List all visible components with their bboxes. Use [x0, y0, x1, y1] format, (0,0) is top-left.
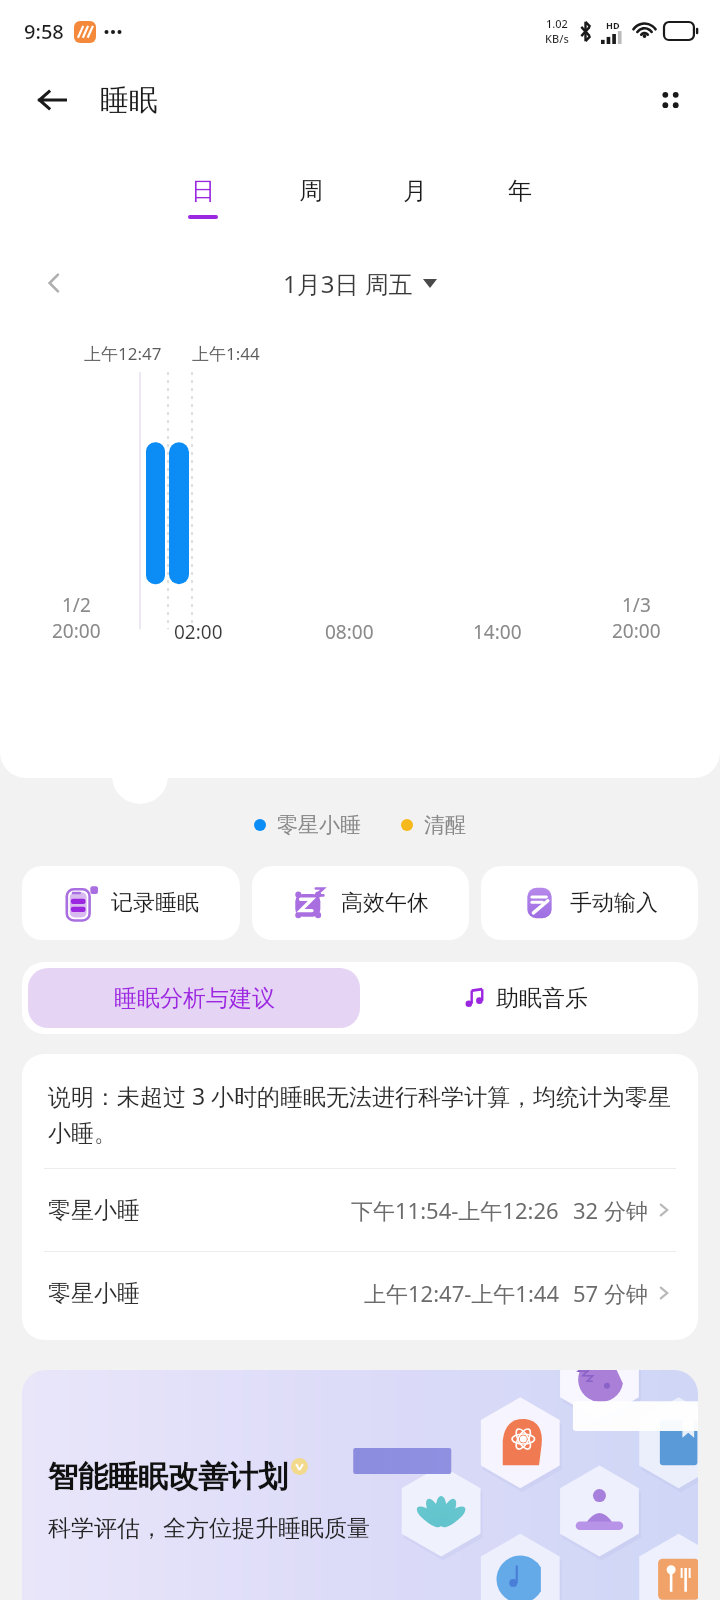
staticText: 上午12:47	[84, 342, 162, 365]
staticText: 上午12:47-上午1:44	[364, 1278, 559, 1308]
button[interactable]: 记录睡眠	[22, 866, 240, 940]
staticText: 20:00	[52, 618, 101, 644]
button[interactable]: 月	[391, 172, 439, 223]
staticText: 零星小睡	[277, 812, 361, 838]
button[interactable]: 手动输入	[481, 866, 698, 940]
staticText: 02:00	[174, 619, 223, 645]
staticText: 32 分钟	[573, 1195, 648, 1225]
button[interactable]: 周	[287, 172, 335, 223]
staticText: 日	[191, 176, 215, 206]
staticText: 1/2	[62, 592, 91, 618]
staticText: 14:00	[473, 619, 522, 645]
button[interactable]: Back	[28, 76, 76, 124]
staticText: 月	[403, 176, 427, 206]
button[interactable]: 1月3日 周五	[277, 261, 443, 306]
staticText: 零星小睡	[48, 1279, 140, 1308]
staticText: 说明：未超过 3 小时的睡眠无法进行科学计算，均统计为零星小睡。	[48, 1080, 672, 1148]
button[interactable]: 日	[176, 172, 230, 223]
button[interactable]: More options	[646, 76, 694, 124]
staticText: 年	[508, 176, 532, 206]
staticText: 科学评估，全方位提升睡眠质量	[48, 1514, 370, 1543]
staticText: 1/3	[622, 592, 651, 618]
staticText: 睡眠	[100, 82, 158, 119]
staticText: 零星小睡	[48, 1196, 140, 1225]
staticText: 上午1:44	[192, 342, 260, 365]
staticText: 睡眠分析与建议	[114, 984, 275, 1013]
staticText: 20:00	[612, 618, 661, 644]
button[interactable]: 高效午休	[252, 866, 469, 940]
staticText: 08:00	[325, 619, 374, 645]
staticText: 手动输入	[570, 889, 658, 917]
staticText: KB/s	[545, 31, 569, 46]
staticText: 下午11:54-上午12:26	[351, 1195, 559, 1225]
staticText: 清醒	[424, 812, 466, 838]
staticText: 9:58	[24, 18, 64, 45]
button[interactable]: 智能睡眠改善计划	[22, 1370, 698, 1600]
staticText: 高效午休	[341, 889, 429, 917]
button[interactable]: 年	[496, 172, 544, 223]
staticText: 1月3日 周五	[283, 267, 413, 300]
staticText: 智能睡眠改善计划	[48, 1458, 288, 1496]
button[interactable]: 零星小睡	[22, 1169, 698, 1251]
button[interactable]: Previous day	[34, 263, 74, 303]
staticText: 记录睡眠	[111, 889, 199, 917]
staticText: 助眠音乐	[496, 984, 588, 1013]
staticText: 1.02	[546, 16, 568, 31]
button[interactable]: 助眠音乐	[360, 968, 692, 1028]
staticText: 57 分钟	[573, 1278, 648, 1308]
staticText: HD	[606, 19, 620, 31]
button[interactable]: 睡眠分析与建议	[28, 968, 360, 1028]
button[interactable]: 零星小睡	[22, 1252, 698, 1334]
staticText: 周	[299, 176, 323, 206]
